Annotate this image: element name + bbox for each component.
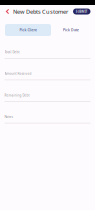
staticText: Remaining Debt — [4, 93, 29, 97]
staticText: Pick Client — [19, 28, 36, 32]
button[interactable]: Back — [1, 7, 13, 16]
staticText: New Debts Customer — [13, 8, 68, 15]
button[interactable]: Pick Date — [51, 24, 91, 36]
staticText: Amount Received — [4, 71, 31, 76]
staticText: Pick Date — [63, 28, 79, 32]
staticText: Notes — [4, 115, 12, 119]
button[interactable]: Pick Client — [5, 24, 51, 36]
staticText: Total Debt — [4, 50, 19, 54]
staticText: SUBMIT — [76, 9, 88, 13]
button[interactable]: SUBMIT — [73, 8, 90, 14]
